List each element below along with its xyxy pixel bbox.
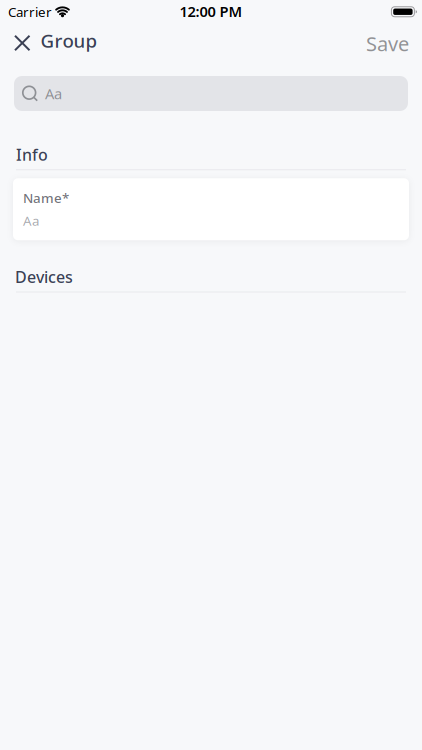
staticText: Name* bbox=[23, 189, 69, 207]
staticText: Group bbox=[40, 28, 97, 53]
staticText: Devices bbox=[15, 266, 73, 287]
button[interactable]: Search bbox=[14, 76, 408, 111]
staticText: 12:00 PM bbox=[179, 2, 242, 21]
staticText: Carrier bbox=[8, 3, 52, 21]
button[interactable]: Save bbox=[366, 24, 409, 62]
staticText: Aa bbox=[45, 84, 62, 103]
button[interactable]: Close bbox=[9, 28, 35, 58]
staticText: Aa bbox=[23, 212, 39, 229]
staticText: Save bbox=[366, 30, 409, 57]
button[interactable]: Name bbox=[13, 178, 409, 240]
staticText: Info bbox=[16, 144, 48, 165]
